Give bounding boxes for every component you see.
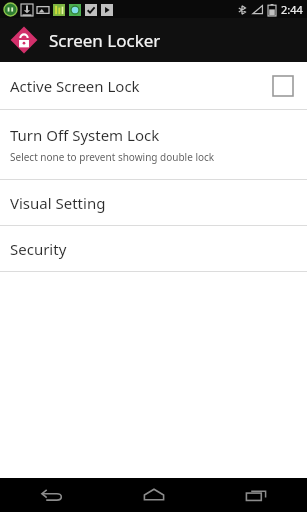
button[interactable]: Home bbox=[103, 478, 205, 512]
button[interactable]: Recent apps bbox=[205, 478, 307, 512]
staticText: Turn Off System Lock bbox=[10, 125, 160, 145]
other: App icon bbox=[8, 24, 40, 56]
staticText: 2:44 bbox=[281, 2, 303, 17]
staticText: Active Screen Lock bbox=[10, 76, 273, 96]
other: Active Screen Lock checkbox bbox=[273, 76, 293, 96]
staticText: Select none to prevent showing double lo… bbox=[10, 150, 215, 164]
button[interactable]: Visual Setting bbox=[0, 180, 307, 225]
staticText: Security bbox=[10, 239, 67, 259]
staticText: Visual Setting bbox=[10, 193, 106, 213]
button[interactable]: Security bbox=[0, 226, 307, 271]
staticText: Screen Locker bbox=[49, 29, 161, 52]
button[interactable]: Back bbox=[0, 478, 103, 512]
button[interactable]: Active Screen Lock bbox=[0, 62, 307, 109]
button[interactable]: Turn Off System Lock bbox=[0, 110, 307, 179]
